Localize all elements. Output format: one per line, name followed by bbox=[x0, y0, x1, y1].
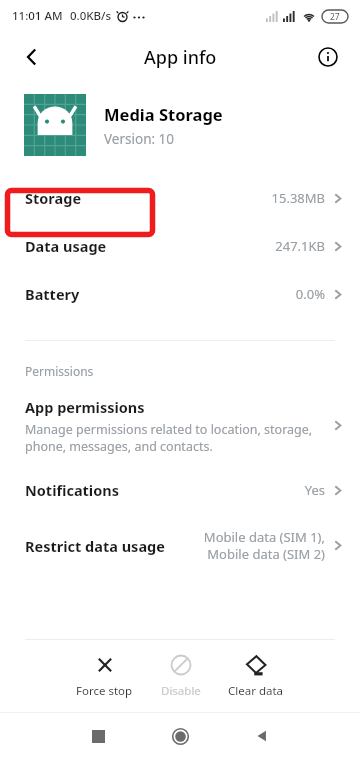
button[interactable]: Recents bbox=[78, 716, 118, 756]
staticText: Restrict data usage bbox=[25, 536, 165, 556]
staticText: Storage bbox=[25, 188, 82, 208]
button[interactable]: Clear data bbox=[222, 650, 290, 703]
staticText: 15.38MB bbox=[271, 189, 325, 207]
staticText: Battery bbox=[25, 284, 80, 304]
button[interactable]: Back bbox=[242, 716, 282, 756]
staticText: Media Storage bbox=[104, 103, 223, 125]
button[interactable]: Disable bbox=[155, 650, 207, 703]
button[interactable]: Data usage bbox=[0, 222, 360, 270]
staticText: App permissions bbox=[25, 397, 145, 417]
button[interactable]: Notifications bbox=[0, 466, 360, 514]
staticText: Permissions bbox=[25, 363, 94, 379]
staticText: 27 bbox=[330, 11, 340, 23]
staticText: Yes bbox=[304, 481, 325, 499]
staticText: Force stop bbox=[76, 683, 133, 699]
staticText: App info bbox=[144, 45, 217, 70]
staticText: Disable bbox=[161, 683, 201, 699]
button[interactable]: Home bbox=[160, 716, 200, 756]
button[interactable]: Battery bbox=[0, 270, 360, 318]
staticText: Version: 10 bbox=[104, 130, 175, 148]
staticText: Data usage bbox=[25, 236, 107, 256]
staticText: 0.0% bbox=[295, 285, 325, 303]
staticText: 247.1KB bbox=[275, 237, 325, 255]
button[interactable]: Force stop bbox=[70, 650, 139, 703]
staticText: Manage permissions related to location, … bbox=[25, 421, 313, 454]
staticText: Mobile data (SIM 1), Mobile data (SIM 2) bbox=[203, 528, 325, 563]
button[interactable]: App details bbox=[306, 35, 350, 79]
staticText: 0.0KB/s bbox=[70, 8, 112, 24]
button[interactable]: App permissions bbox=[0, 389, 360, 466]
staticText: Clear data bbox=[228, 683, 284, 699]
button[interactable]: Back bbox=[10, 35, 54, 79]
button[interactable]: Storage bbox=[0, 174, 360, 222]
staticText: 11:01 AM bbox=[12, 8, 63, 24]
staticText: Notifications bbox=[25, 480, 119, 500]
button[interactable]: Restrict data usage bbox=[0, 514, 360, 577]
